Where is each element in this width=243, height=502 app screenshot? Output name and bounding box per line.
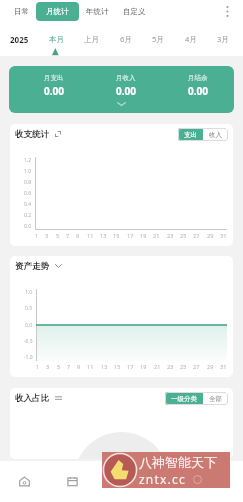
button[interactable]: 年统计	[79, 2, 116, 21]
staticText: 日常	[14, 7, 29, 16]
staticText: 0.00	[116, 84, 136, 98]
staticText: 上月	[84, 35, 99, 44]
staticText: 0.2	[24, 212, 32, 219]
button[interactable]: 2025	[8, 29, 31, 50]
staticText: 23	[167, 232, 174, 239]
staticText: 7	[66, 232, 70, 239]
staticText: 月统计	[46, 7, 69, 16]
button[interactable]: 5月	[149, 29, 167, 49]
staticText: 21	[154, 363, 161, 370]
button[interactable]: More options	[217, 1, 237, 21]
button[interactable]: 自定义	[116, 2, 153, 21]
staticText: 0.00	[188, 84, 208, 98]
button[interactable]: Add record	[96, 461, 145, 502]
staticText: 1.0	[25, 289, 33, 296]
staticText: 13	[100, 232, 107, 239]
staticText: 19	[140, 363, 147, 370]
staticText: 25	[180, 232, 187, 239]
button[interactable]: Statistics	[145, 461, 194, 502]
staticText: 3	[46, 363, 50, 370]
button[interactable]: 月统计	[36, 2, 79, 21]
staticText: 支出	[184, 131, 197, 139]
staticText: 7	[67, 363, 71, 370]
staticText: 1	[36, 363, 40, 370]
staticText: 资产走势	[15, 261, 49, 272]
button[interactable]: 本月	[46, 30, 67, 49]
button[interactable]: Calendar	[48, 461, 96, 502]
button[interactable]: 收入	[203, 128, 228, 141]
button[interactable]: 支出	[178, 128, 203, 141]
staticText: 31	[220, 232, 227, 239]
staticText: zntx.cc	[139, 471, 186, 487]
button[interactable]: 一级分类	[165, 392, 203, 405]
staticText: 0.0	[24, 223, 32, 230]
staticText: 5月	[152, 34, 164, 44]
staticText: 全部	[209, 395, 222, 403]
staticText: 25	[180, 363, 187, 370]
staticText: 17	[127, 232, 134, 239]
button[interactable]: 全部	[203, 392, 228, 405]
button[interactable]: 上月	[81, 30, 102, 49]
staticText: 3月	[217, 34, 229, 44]
staticText: 5	[57, 363, 61, 370]
staticText: -0.5	[24, 338, 33, 345]
staticText: 31	[220, 363, 227, 370]
button[interactable]: 6月	[117, 29, 135, 49]
staticText: 29	[207, 232, 214, 239]
staticText: 月结余	[188, 74, 208, 82]
button[interactable]: Switch	[53, 393, 63, 403]
staticText: 1	[35, 232, 39, 239]
button[interactable]: Expand	[53, 129, 63, 139]
button[interactable]: 日常	[7, 2, 36, 21]
button[interactable]: 3月	[214, 29, 232, 49]
staticText: 19	[140, 232, 147, 239]
staticText: 0.5	[25, 305, 33, 312]
staticText: 月收入	[116, 74, 136, 82]
staticText: 15	[114, 363, 121, 370]
staticText: 0.00	[44, 84, 64, 98]
staticText: 9	[76, 232, 80, 239]
staticText: 1.2	[24, 157, 32, 164]
staticText: 27	[193, 232, 200, 239]
staticText: 15	[113, 232, 120, 239]
staticText: -1.0	[24, 354, 33, 361]
button[interactable]: 4月	[182, 29, 200, 49]
button[interactable]: Profile	[194, 461, 243, 502]
staticText: 17	[127, 363, 134, 370]
staticText: 6月	[120, 34, 132, 44]
staticText: 自定义	[123, 7, 146, 16]
staticText: 4月	[185, 34, 197, 44]
staticText: 2025	[10, 34, 29, 45]
staticText: 收支统计	[15, 129, 49, 140]
staticText: 29	[207, 363, 214, 370]
staticText: 9	[77, 363, 81, 370]
staticText: 11	[87, 363, 94, 370]
staticText: 年统计	[86, 7, 109, 16]
staticText: 一级分类	[171, 395, 197, 403]
button[interactable]: Change range	[53, 261, 63, 271]
button[interactable]: Home	[0, 461, 48, 502]
staticText: 收入	[209, 131, 222, 139]
staticText: 11	[87, 232, 94, 239]
staticText: 月支出	[44, 74, 64, 82]
button[interactable]: 月支出	[9, 66, 234, 113]
staticText: 1.0	[24, 168, 32, 175]
staticText: 27	[193, 363, 200, 370]
staticText: 5	[56, 232, 60, 239]
staticText: 0.0	[25, 322, 33, 329]
staticText: 0.8	[24, 179, 32, 186]
staticText: 0.6	[24, 190, 32, 197]
staticText: 收入占比	[15, 393, 49, 404]
staticText: 0.4	[24, 201, 32, 208]
staticText: 21	[153, 232, 160, 239]
staticText: 本月	[49, 35, 64, 44]
staticText: 13	[101, 363, 108, 370]
staticText: 23	[167, 363, 174, 370]
staticText: 3	[45, 232, 49, 239]
staticText: 八神智能天下	[139, 454, 217, 470]
